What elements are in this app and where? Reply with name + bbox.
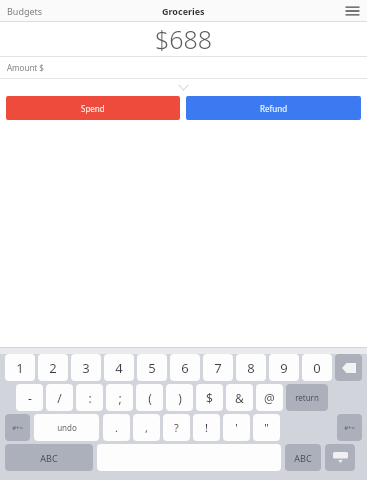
staticText: , — [145, 420, 148, 435]
button[interactable]: 2 — [38, 354, 68, 381]
button[interactable]: Budgets — [7, 5, 43, 17]
staticText: 3 — [82, 359, 90, 377]
staticText: return — [295, 392, 319, 403]
staticText: 0 — [313, 359, 321, 377]
button[interactable]: " — [253, 414, 280, 441]
staticText: ABC — [294, 452, 312, 464]
staticText: 9 — [280, 359, 288, 377]
button[interactable]: 8 — [236, 354, 266, 381]
staticText: " — [264, 420, 269, 435]
staticText: Refund — [260, 103, 288, 114]
button[interactable]: - — [16, 384, 43, 411]
button[interactable]: Backspace — [335, 354, 362, 381]
button[interactable]: 0 — [302, 354, 332, 381]
staticText: : — [88, 390, 92, 406]
button[interactable]: 1 — [5, 354, 35, 381]
button[interactable]: Numbers and symbols — [5, 414, 30, 441]
button[interactable]: ; — [106, 384, 133, 411]
staticText: Groceries — [162, 5, 205, 17]
staticText: 7 — [214, 359, 222, 377]
button[interactable]: $ — [196, 384, 223, 411]
button[interactable]: Spend — [6, 96, 180, 120]
staticText: #+= — [12, 424, 23, 432]
staticText: ; — [118, 390, 122, 406]
staticText: & — [235, 390, 244, 406]
button[interactable]: undo — [34, 414, 99, 441]
button[interactable]: : — [76, 384, 103, 411]
button[interactable]: ) — [166, 384, 193, 411]
staticText: ' — [235, 420, 238, 435]
button[interactable]: 3 — [71, 354, 101, 381]
button[interactable]: / — [46, 384, 73, 411]
button[interactable]: Amount $ — [0, 57, 367, 78]
button[interactable]: , — [133, 414, 160, 441]
button[interactable]: ( — [136, 384, 163, 411]
button[interactable]: @ — [256, 384, 283, 411]
staticText: 4 — [115, 359, 123, 377]
staticText: 1 — [16, 359, 24, 377]
staticText: @ — [264, 390, 275, 406]
button[interactable]: 6 — [170, 354, 200, 381]
staticText: Spend — [81, 103, 105, 114]
staticText: ! — [205, 420, 208, 435]
button[interactable]: Hide keyboard — [325, 444, 355, 471]
button[interactable]: ABC — [5, 444, 93, 471]
button[interactable]: . — [103, 414, 130, 441]
staticText: 2 — [49, 359, 57, 377]
staticText: ABC — [40, 452, 58, 464]
button[interactable]: 7 — [203, 354, 233, 381]
staticText: undo — [57, 422, 77, 433]
button[interactable]: Refund — [186, 96, 361, 120]
staticText: #+= — [344, 424, 355, 432]
staticText: - — [28, 390, 32, 406]
staticText: . — [115, 420, 118, 435]
button[interactable]: ? — [163, 414, 190, 441]
button[interactable]: 9 — [269, 354, 299, 381]
staticText: 5 — [148, 359, 156, 377]
staticText: Amount $ — [7, 62, 44, 73]
staticText: 6 — [181, 359, 189, 377]
button[interactable]: & — [226, 384, 253, 411]
staticText: ( — [148, 390, 152, 406]
staticText: ? — [174, 420, 179, 435]
staticText: / — [57, 390, 62, 406]
button[interactable]: ' — [223, 414, 250, 441]
button[interactable]: 5 — [137, 354, 167, 381]
button[interactable]: ABC — [285, 444, 321, 471]
staticText: ) — [178, 390, 182, 406]
staticText: 8 — [247, 359, 255, 377]
button[interactable]: 4 — [104, 354, 134, 381]
staticText: $ — [206, 390, 213, 406]
button[interactable]: Numbers and symbols — [337, 414, 362, 441]
button[interactable]: Menu — [343, 2, 361, 20]
staticText: $688 — [155, 22, 213, 56]
button[interactable]: ! — [193, 414, 220, 441]
button[interactable]: return — [286, 384, 328, 411]
